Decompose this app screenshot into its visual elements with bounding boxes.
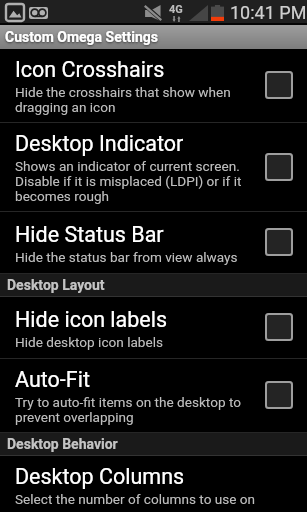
staticText: Hide icon labels — [15, 307, 168, 332]
staticText: Desktop Columns — [15, 464, 185, 489]
staticText: Hide Status Bar — [15, 222, 164, 247]
staticText: Auto-Fit — [15, 367, 90, 392]
button[interactable]: Desktop Columns — [0, 456, 307, 512]
staticText: Icon Crosshairs — [15, 57, 165, 82]
staticText: Desktop Indicator — [15, 131, 184, 156]
button[interactable]: Desktop Indicator — [0, 123, 307, 212]
button[interactable]: Hide icon labels — [0, 297, 307, 359]
staticText: 4G — [169, 3, 183, 16]
staticText: Shows an indicator of current screen. Di… — [15, 158, 257, 204]
staticText: Custom Omega Settings — [5, 29, 158, 45]
button[interactable]: Toggle Hide icon labels — [263, 311, 295, 343]
staticText: Desktop Behavior — [7, 436, 118, 452]
staticText: Try to auto-fit items on the desktop to … — [15, 394, 257, 425]
staticText: Select the number of columns to use on t… — [15, 491, 257, 505]
staticText: Desktop Layout — [7, 277, 105, 293]
staticText: Hide the crosshairs that show when dragg… — [15, 84, 257, 115]
button[interactable]: Auto-Fit — [0, 359, 307, 433]
staticText: Hide desktop icon labels — [15, 334, 164, 350]
staticText: 10:41 PM — [230, 2, 307, 23]
button[interactable]: Toggle Auto-Fit — [263, 379, 295, 411]
button[interactable]: Toggle Icon Crosshairs — [263, 69, 295, 101]
staticText: Hide the status bar from view always — [15, 249, 238, 265]
button[interactable]: Toggle Hide Status Bar — [263, 226, 295, 258]
button[interactable]: Icon Crosshairs — [0, 49, 307, 123]
button[interactable]: Hide Status Bar — [0, 212, 307, 274]
button[interactable]: Toggle Desktop Indicator — [263, 151, 295, 183]
